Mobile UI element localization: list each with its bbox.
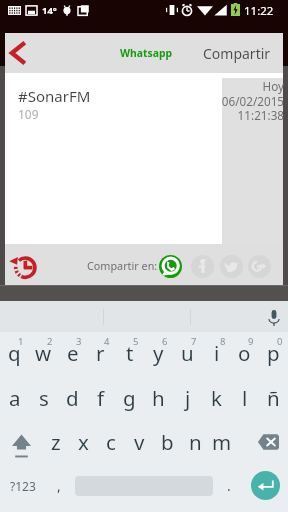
staticText: 6 — [162, 335, 168, 348]
staticText: e — [67, 339, 79, 367]
button[interactable]: j — [173, 376, 202, 419]
button[interactable]: Enter — [243, 464, 288, 507]
staticText: p — [267, 339, 280, 367]
staticText: v — [134, 428, 145, 456]
staticText: 7 — [191, 335, 197, 348]
button[interactable]: m — [208, 420, 236, 463]
button[interactable]: Facebook — [191, 255, 214, 278]
button[interactable]: a — [0, 376, 29, 419]
button[interactable]: Space — [72, 464, 215, 507]
staticText: 5 — [133, 335, 139, 348]
button[interactable]: p — [259, 331, 288, 374]
button[interactable]: k — [202, 376, 231, 419]
staticText: s — [39, 384, 49, 412]
button[interactable]: ñ — [259, 376, 288, 419]
button[interactable]: e — [58, 331, 87, 374]
staticText: 14° — [42, 4, 57, 17]
staticText: g — [123, 384, 136, 412]
button[interactable]: s — [29, 376, 58, 419]
button[interactable]: . — [215, 464, 243, 507]
staticText: Compartir — [203, 44, 271, 63]
button[interactable]: Voice input — [261, 301, 286, 332]
staticText: 8 — [220, 335, 226, 348]
button[interactable]: History — [8, 253, 36, 281]
staticText: 06/02/2015 — [205, 93, 284, 109]
button[interactable]: v — [125, 420, 153, 463]
button[interactable]: n — [181, 420, 209, 463]
button[interactable]: d — [58, 376, 87, 419]
staticText: b — [161, 428, 174, 456]
button[interactable]: q — [0, 331, 29, 374]
staticText: k — [211, 384, 222, 412]
staticText: q — [8, 339, 21, 367]
staticText: c — [106, 428, 116, 456]
button[interactable]: WhatsApp — [159, 255, 182, 278]
staticText: ?123 — [10, 478, 36, 494]
staticText: 3 — [76, 335, 82, 348]
button[interactable]: Google Plus — [248, 255, 271, 278]
button[interactable]: Whatsapp — [114, 33, 179, 73]
staticText: 9 — [248, 335, 254, 348]
button[interactable]: g — [115, 376, 144, 419]
button[interactable]: Compartir — [197, 33, 277, 73]
staticText: Hoy — [205, 78, 284, 94]
button[interactable]: w — [29, 331, 58, 374]
button[interactable]: h — [144, 376, 173, 419]
staticText: Whatsapp — [120, 46, 173, 60]
staticText: w — [35, 339, 52, 367]
button[interactable]: i — [202, 331, 231, 374]
staticText: r — [96, 339, 105, 367]
staticText: f — [97, 384, 105, 412]
button[interactable]: x — [69, 420, 97, 463]
staticText: 4 — [104, 335, 110, 348]
staticText: #SonarFM — [18, 86, 91, 106]
staticText: 2 — [47, 335, 53, 348]
staticText: d — [66, 384, 79, 412]
button[interactable]: Twitter — [220, 255, 243, 278]
button[interactable]: u — [173, 331, 202, 374]
button[interactable]: o — [230, 331, 259, 374]
staticText: , — [57, 476, 61, 495]
button[interactable]: Shift — [0, 420, 42, 463]
staticText: h — [152, 384, 165, 412]
staticText: l — [242, 384, 248, 412]
staticText: j — [185, 384, 191, 412]
staticText: t — [126, 339, 134, 367]
button[interactable]: Back — [5, 33, 43, 73]
staticText: ñ — [267, 384, 280, 412]
staticText: m — [212, 428, 232, 456]
staticText: o — [238, 339, 251, 367]
button[interactable]: r — [86, 331, 115, 374]
staticText: x — [78, 428, 89, 456]
button[interactable]: z — [42, 420, 70, 463]
staticText: 1 — [18, 335, 24, 348]
staticText: 0 — [277, 335, 283, 348]
button[interactable]: , — [45, 464, 72, 507]
button[interactable]: b — [153, 420, 181, 463]
staticText: Compartir en: — [87, 258, 158, 273]
button[interactable]: l — [230, 376, 259, 419]
button[interactable]: c — [97, 420, 125, 463]
staticText: 11:21:38 — [205, 107, 284, 123]
button[interactable]: t — [115, 331, 144, 374]
staticText: n — [189, 428, 202, 456]
staticText: i — [214, 339, 220, 367]
staticText: 109 — [18, 106, 39, 122]
staticText: y — [153, 339, 164, 367]
button[interactable]: y — [144, 331, 173, 374]
staticText: u — [181, 339, 194, 367]
button[interactable]: ?123 — [0, 464, 45, 507]
staticText: 11:22 — [244, 3, 274, 19]
staticText: z — [51, 428, 61, 456]
button[interactable]: f — [86, 376, 115, 419]
staticText: . — [227, 476, 231, 495]
staticText: a — [9, 384, 21, 412]
button[interactable]: Backspace — [246, 420, 288, 463]
